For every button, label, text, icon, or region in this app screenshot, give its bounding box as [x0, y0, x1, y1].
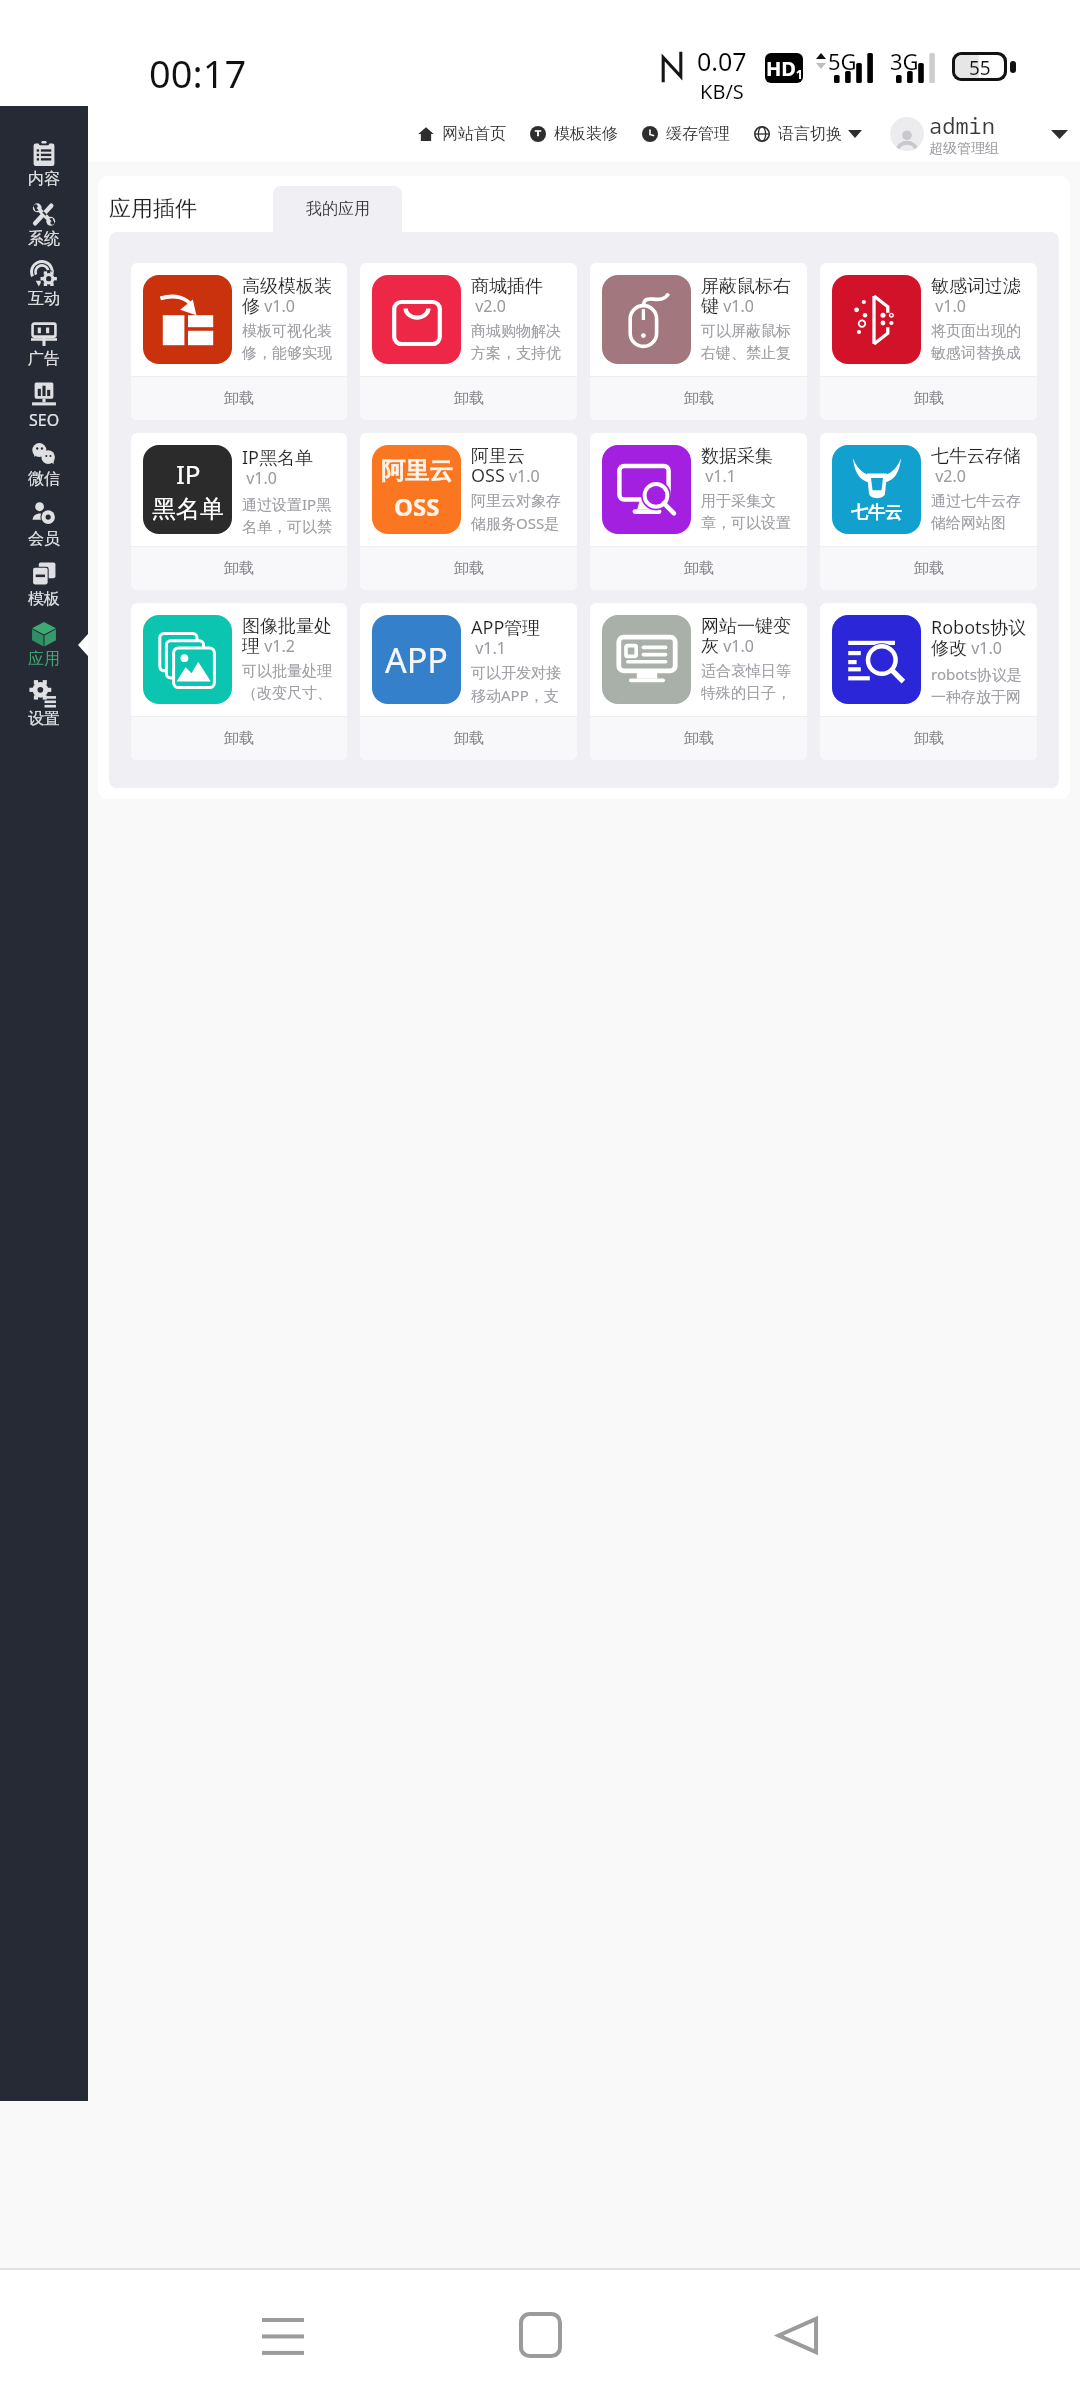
staticText: 卸载 [914, 729, 944, 748]
staticText: 卸载 [914, 389, 944, 408]
staticText: 七牛云存储 v2.0 [931, 445, 1021, 487]
button[interactable]: 系统 [0, 201, 88, 261]
staticText: 缓存管理 [666, 124, 730, 144]
button[interactable]: 网站首页 [418, 116, 506, 152]
staticText: 超级管理组 [929, 140, 999, 158]
button[interactable]: APP [360, 603, 577, 760]
button[interactable]: 卸载 [590, 717, 807, 760]
staticText: IP黑名单 v1.0 [242, 445, 313, 489]
button[interactable]: 阿里云 [360, 433, 577, 590]
button[interactable]: 网站一键变 灰 v1.0 [590, 603, 807, 760]
staticText: 适合哀悼日等 特殊的日子， [701, 662, 791, 703]
button[interactable]: 应用插件 [98, 186, 273, 232]
button[interactable]: 敏感词过滤 v1.0 [820, 263, 1037, 420]
staticText: 广告 [28, 349, 60, 369]
button[interactable]: 广告 [0, 321, 88, 381]
staticText: 55 [969, 55, 991, 78]
button[interactable]: 微信 [0, 441, 88, 501]
button[interactable]: IP [131, 433, 347, 590]
staticText: 内容 [28, 169, 60, 189]
button[interactable]: 卸载 [131, 547, 347, 590]
staticText: 系统 [28, 229, 60, 249]
staticText: 网站一键变 灰 v1.0 [701, 615, 791, 657]
button[interactable]: More [1046, 121, 1072, 147]
staticText: 我的应用 [306, 199, 370, 219]
button[interactable]: 缓存管理 [642, 116, 730, 152]
staticText: 网站首页 [442, 124, 506, 144]
button[interactable]: 互动 [0, 261, 88, 321]
staticText: 1 [796, 66, 803, 82]
staticText: 0.07 [697, 44, 747, 78]
staticText: IP [176, 456, 201, 491]
staticText: 将页面出现的 敏感词替换成 [931, 322, 1021, 363]
button[interactable]: 会员 [0, 501, 88, 561]
staticText: KB/S [700, 78, 744, 105]
staticText: 卸载 [454, 389, 484, 408]
staticText: 高级模板装 修 v1.0 [242, 275, 332, 317]
button[interactable]: 卸载 [590, 547, 807, 590]
button[interactable]: 卸载 [131, 717, 347, 760]
staticText: HD [766, 55, 796, 82]
button[interactable]: 卸载 [360, 717, 577, 760]
staticText: 敏感词过滤 v1.0 [931, 275, 1021, 317]
staticText: admin [929, 110, 996, 140]
staticText: 微信 [28, 469, 60, 489]
button[interactable]: Home [480, 2276, 600, 2394]
staticText: 语言切换 [778, 124, 842, 144]
staticText: 数据采集 v1.1 [701, 445, 773, 487]
staticText: 卸载 [454, 729, 484, 748]
staticText: 应用插件 [109, 195, 197, 223]
button[interactable]: 高级模板装 修 v1.0 [131, 263, 347, 420]
staticText: 00:17 [149, 47, 247, 99]
button[interactable]: 卸载 [820, 547, 1037, 590]
staticText: 卸载 [684, 559, 714, 578]
button[interactable]: 卸载 [590, 377, 807, 420]
button[interactable]: 模板 [0, 561, 88, 621]
staticText: 模板装修 [554, 124, 618, 144]
staticText: 阿里云对象存 储服务OSS是 [471, 492, 561, 534]
staticText: 卸载 [684, 729, 714, 748]
button[interactable]: 卸载 [360, 377, 577, 420]
staticText: 卸载 [224, 559, 254, 578]
button[interactable]: 模板装修 [530, 116, 618, 152]
staticText: APP管理 v1.1 [471, 615, 541, 659]
button[interactable]: 卸载 [820, 377, 1037, 420]
staticText: 通过七牛云存 储给网站图 [931, 492, 1021, 533]
staticText: 模板可视化装 修，能够实现 [242, 322, 332, 363]
button[interactable]: 七牛云 [820, 433, 1037, 590]
staticText: 模板 [28, 589, 60, 609]
staticText: 3G [890, 46, 919, 76]
button[interactable]: 我的应用 [273, 186, 402, 232]
button[interactable]: 商城插件 v2.0 [360, 263, 577, 420]
button[interactable]: admin [890, 110, 999, 158]
button[interactable]: 内容 [0, 141, 88, 201]
button[interactable]: 卸载 [820, 717, 1037, 760]
button[interactable]: Robots协议 修改 v1.0 [820, 603, 1037, 760]
button[interactable]: 应用 [0, 621, 88, 681]
staticText: 互动 [28, 289, 60, 309]
staticText: APP [385, 637, 448, 683]
button[interactable]: Recents [223, 2276, 343, 2394]
staticText: 卸载 [454, 559, 484, 578]
staticText: 阿里云 OSS v1.0 [471, 445, 540, 487]
staticText: OSS [394, 490, 440, 523]
button[interactable]: 设置 [0, 681, 88, 741]
button[interactable]: 数据采集 v1.1 [590, 433, 807, 590]
staticText: 应用 [28, 649, 60, 669]
button[interactable]: Back [738, 2276, 858, 2394]
staticText: robots协议是 一种存放于网 [931, 664, 1022, 707]
staticText: 卸载 [914, 559, 944, 578]
button[interactable]: 卸载 [360, 547, 577, 590]
staticText: 卸载 [684, 389, 714, 408]
button[interactable]: SEO [0, 381, 88, 441]
staticText: 5G [828, 46, 857, 76]
button[interactable]: 屏蔽鼠标右 键 v1.0 [590, 263, 807, 420]
button[interactable]: 图像批量处 理 v1.2 [131, 603, 347, 760]
staticText: 用于采集文 章，可以设置 [701, 492, 791, 533]
staticText: 商城插件 v2.0 [471, 275, 543, 317]
button[interactable]: 卸载 [131, 377, 347, 420]
button[interactable]: 语言切换 [754, 116, 862, 152]
staticText: 七牛云 [851, 502, 902, 523]
staticText: 可以开发对接 移动APP，支 [471, 664, 561, 706]
staticText: 可以屏蔽鼠标 右键、禁止复 [701, 322, 791, 363]
